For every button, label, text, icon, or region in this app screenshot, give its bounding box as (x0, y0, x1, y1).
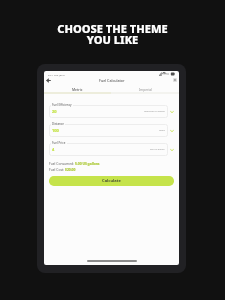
staticText: Fuel Cost: (49, 167, 65, 171)
staticText: 5.00 US gallons (75, 161, 100, 165)
staticText: CHOOSE THE THEME YOU LIKE (0, 21, 225, 47)
staticText: Calculate (102, 178, 121, 184)
button[interactable]: Imperial (111, 85, 179, 92)
staticText: Metric (72, 87, 83, 91)
staticText: $20.00 (65, 167, 76, 171)
staticText: Fuel Consumed: (49, 161, 75, 165)
staticText: Fuel Calculator (99, 78, 125, 83)
staticText: per US gallon (150, 148, 165, 151)
button[interactable]: Metric (44, 85, 111, 92)
staticText: Distance (52, 122, 64, 126)
button[interactable]: Calculate (49, 176, 174, 186)
staticText: miles (159, 129, 165, 132)
staticText: Imperial (139, 87, 152, 91)
button[interactable]: Back (45, 77, 52, 83)
button[interactable]: Settings (171, 77, 178, 83)
staticText: 20 (52, 109, 57, 114)
staticText: 9:41 Thu Jan 8 (48, 73, 65, 76)
staticText: 100 (52, 128, 59, 133)
staticText: miles per US gallon (144, 110, 165, 113)
staticText: Fuel Price (52, 141, 66, 145)
staticText: 4 (52, 147, 55, 152)
staticText: Fuel Efficiency (52, 103, 72, 107)
